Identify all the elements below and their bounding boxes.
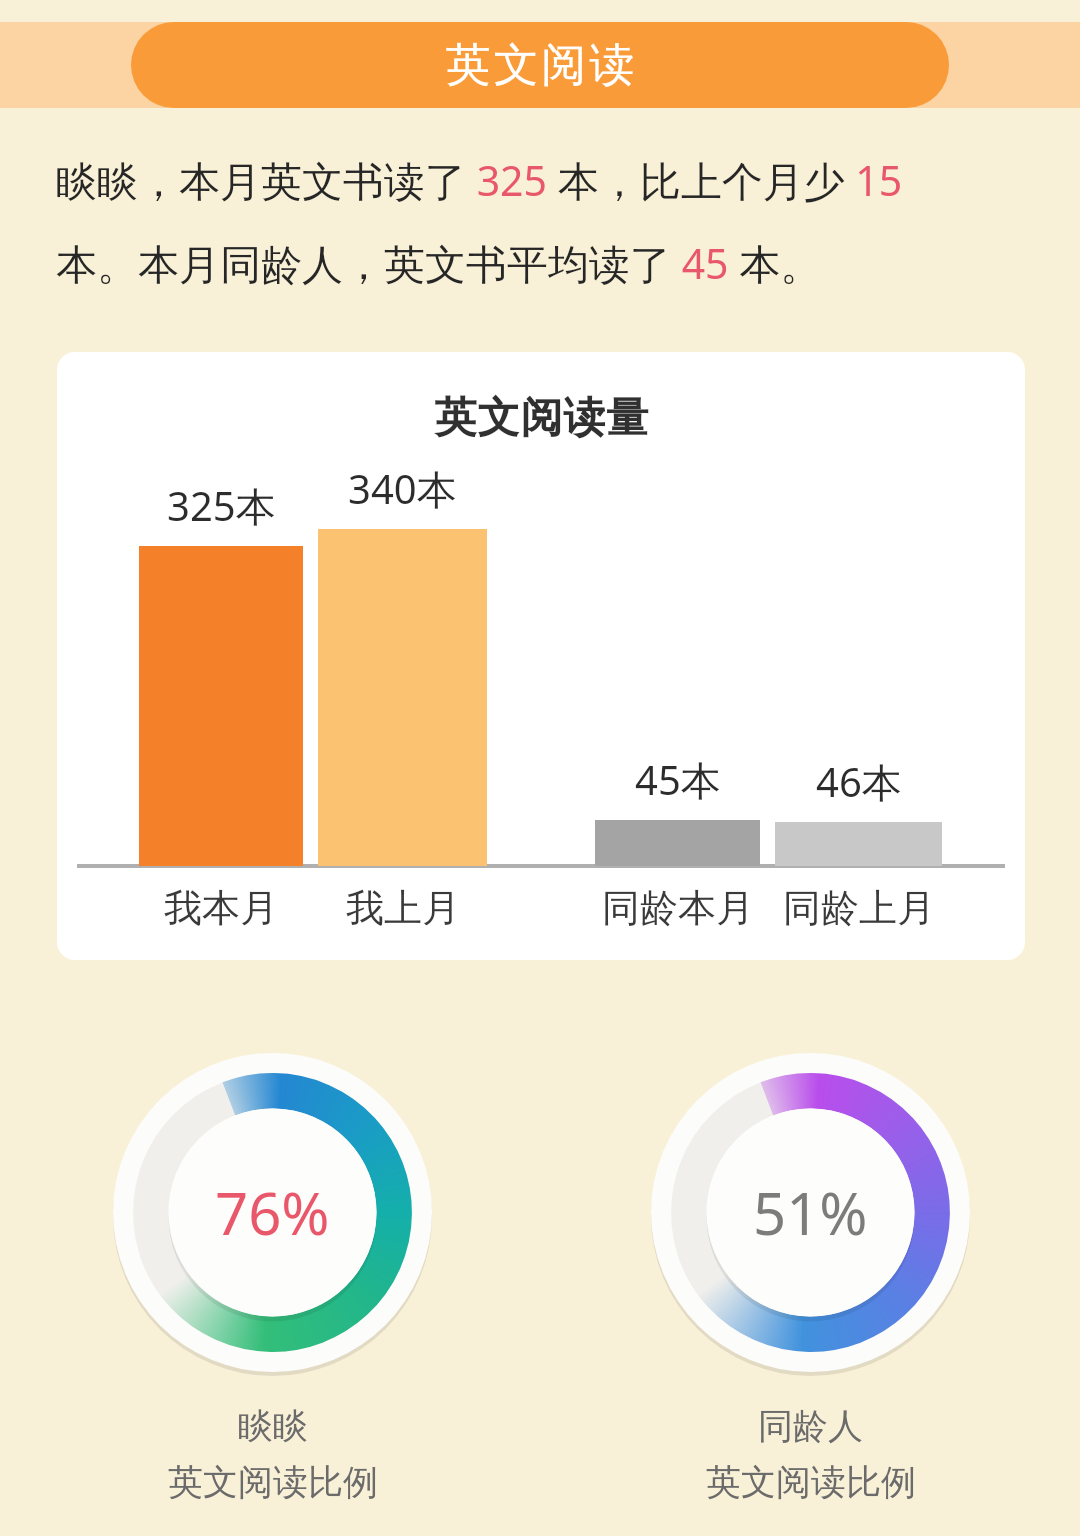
staticText: 英文阅读: [444, 37, 636, 94]
button[interactable]: 同龄人 英文阅读比例 51%: [651, 1053, 970, 1372]
staticText: 英文阅读量: [434, 392, 649, 445]
staticText: 同龄上月: [783, 884, 935, 932]
staticText: 同龄本月: [602, 884, 754, 932]
staticText: 睒睒，本月英文书读了 325 本，比上个月少 15 本。本月同龄人，英文书平均读…: [56, 152, 903, 291]
staticText: 英文阅读比例: [168, 1460, 378, 1504]
staticText: 我上月: [346, 884, 460, 932]
staticText: 我本月: [164, 884, 278, 932]
staticText: 325本: [167, 478, 276, 533]
button[interactable]: 英文阅读: [131, 22, 949, 108]
staticText: 51%: [753, 1173, 868, 1252]
staticText: 340本: [348, 461, 457, 516]
staticText: 英文阅读比例: [706, 1460, 916, 1504]
button[interactable]: 英文阅读量: [57, 352, 1025, 960]
staticText: 睒睒: [238, 1404, 308, 1448]
staticText: 76%: [215, 1173, 330, 1252]
button[interactable]: 睒睒 英文阅读比例 76%: [113, 1053, 432, 1372]
staticText: 46本: [816, 754, 902, 809]
staticText: 同龄人: [758, 1404, 863, 1448]
staticText: 45本: [635, 752, 721, 807]
